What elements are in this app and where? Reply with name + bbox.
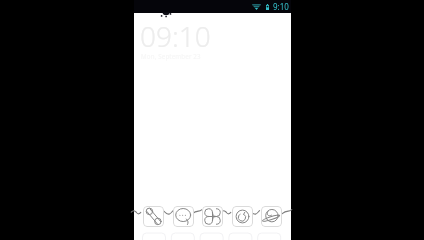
button[interactable]: Phone (143, 206, 164, 227)
staticText: 09:10 (140, 17, 211, 55)
button[interactable]: Messages (173, 206, 194, 227)
button[interactable]: Browser (261, 206, 282, 227)
button[interactable]: Camera (232, 206, 253, 227)
staticText: 9:10 (273, 1, 289, 12)
button[interactable]: Apps (202, 206, 223, 227)
